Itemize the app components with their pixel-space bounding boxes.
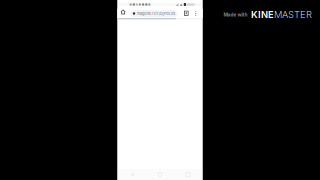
staticText: MASTER: [274, 9, 312, 20]
button[interactable]: magzine.1O1/QjFnXzd: [130, 10, 177, 17]
button[interactable]: More options: [193, 9, 198, 18]
staticText: Made with: [223, 12, 247, 17]
button[interactable]: Open tabs: [183, 9, 190, 18]
button[interactable]: Home: [119, 9, 128, 18]
staticText: magzine.1O1/QjFnXzd: [137, 11, 175, 16]
staticText: KINE: [251, 9, 274, 20]
